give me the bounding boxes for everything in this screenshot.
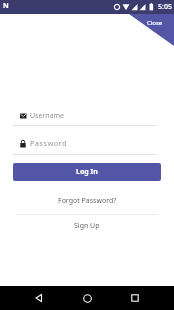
button[interactable]: Forgot Password? <box>0 194 174 207</box>
staticText: Username <box>30 111 65 121</box>
staticText: N <box>3 1 9 11</box>
staticText: 5:05 <box>158 2 172 12</box>
button[interactable] <box>19 286 59 310</box>
button[interactable]: Password <box>20 139 68 149</box>
staticText: Close <box>147 19 163 27</box>
button[interactable]: Username <box>20 111 65 121</box>
button[interactable] <box>115 286 155 310</box>
staticText: Log In <box>76 167 98 177</box>
button[interactable]: Log In <box>13 163 161 181</box>
button[interactable] <box>67 286 107 310</box>
staticText: Password <box>30 139 68 149</box>
staticText: Forgot Password? <box>58 196 117 206</box>
button[interactable]: Close <box>128 14 174 47</box>
staticText: Sign Up <box>74 221 100 231</box>
button[interactable]: Sign Up <box>0 219 174 232</box>
